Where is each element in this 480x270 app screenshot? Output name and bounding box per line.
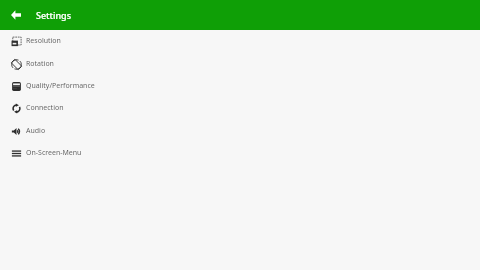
button[interactable]: Navigate back [4, 3, 28, 27]
staticText: Connection [26, 103, 64, 113]
button[interactable]: Rotation [0, 53, 480, 75]
button[interactable]: Audio [0, 120, 480, 142]
staticText: On-Screen-Menu [26, 148, 82, 158]
button[interactable]: Resolution [0, 30, 480, 52]
button[interactable]: Quality/Performance [0, 75, 480, 97]
staticText: Audio [26, 126, 46, 136]
staticText: Settings [36, 9, 72, 21]
staticText: Rotation [26, 59, 54, 69]
staticText: Resolution [26, 36, 61, 46]
staticText: Quality/Performance [26, 81, 95, 91]
button[interactable]: Connection [0, 97, 480, 119]
button[interactable]: On-Screen-Menu [0, 142, 480, 164]
